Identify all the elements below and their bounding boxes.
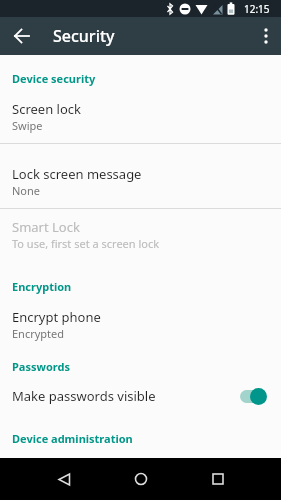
staticText: 12:15 bbox=[244, 2, 270, 16]
staticText: Lock screen message bbox=[12, 165, 142, 183]
staticText: To use, first set a screen lock bbox=[12, 236, 160, 251]
staticText: Screen lock bbox=[12, 100, 81, 118]
staticText: Encrypt phone bbox=[12, 308, 101, 326]
button[interactable] bbox=[251, 21, 281, 51]
button[interactable]: Make passwords visible bbox=[0, 384, 281, 408]
staticText: Make passwords visible bbox=[12, 387, 156, 405]
button[interactable]: Screen lock bbox=[0, 96, 281, 136]
staticText: Passwords bbox=[12, 359, 70, 374]
staticText: Smart Lock bbox=[12, 218, 80, 236]
staticText: Security bbox=[53, 25, 115, 47]
staticText: Device security bbox=[12, 71, 96, 86]
button[interactable] bbox=[6, 20, 38, 52]
button[interactable]: Encrypt phone bbox=[0, 304, 281, 344]
staticText: Swipe bbox=[12, 118, 43, 133]
button[interactable] bbox=[36, 458, 92, 500]
button[interactable] bbox=[190, 458, 246, 500]
staticText: Encrypted bbox=[12, 326, 65, 341]
staticText: None bbox=[12, 183, 41, 198]
staticText: Device administration bbox=[12, 431, 133, 446]
button[interactable]: Lock screen message bbox=[0, 161, 281, 201]
button[interactable]: Smart Lock bbox=[0, 214, 281, 254]
button[interactable] bbox=[113, 458, 169, 500]
staticText: Encryption bbox=[12, 279, 72, 294]
